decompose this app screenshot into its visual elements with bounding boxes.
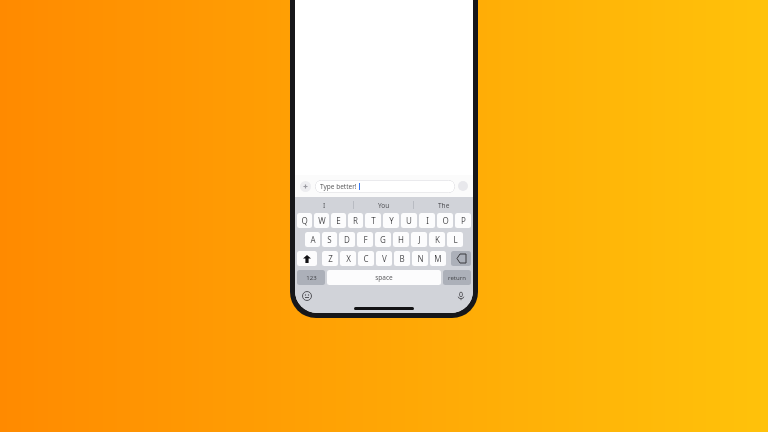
staticText: G xyxy=(380,234,386,245)
button[interactable]: W xyxy=(314,213,329,228)
staticText: The xyxy=(438,201,450,210)
button[interactable]: space xyxy=(327,270,441,285)
button[interactable]: Add attachment xyxy=(300,181,311,192)
staticText: J xyxy=(418,234,421,245)
staticText: O xyxy=(442,215,449,226)
staticText: E xyxy=(336,215,341,226)
button[interactable]: G xyxy=(375,232,391,247)
button[interactable]: Dictate xyxy=(456,291,466,301)
staticText: A xyxy=(310,234,316,245)
staticText: U xyxy=(406,215,412,226)
button[interactable]: The xyxy=(414,197,473,213)
button[interactable]: N xyxy=(412,251,428,266)
button[interactable]: Shift xyxy=(297,251,317,266)
button[interactable]: H xyxy=(393,232,409,247)
staticText: M xyxy=(434,253,442,264)
staticText: S xyxy=(327,234,332,245)
staticText: return xyxy=(448,274,466,282)
staticText: B xyxy=(399,253,405,264)
button[interactable]: U xyxy=(401,213,417,228)
button[interactable]: return xyxy=(443,270,471,285)
button[interactable]: Backspace xyxy=(451,251,471,266)
button[interactable]: V xyxy=(376,251,392,266)
button[interactable]: F xyxy=(357,232,373,247)
staticText: K xyxy=(435,234,440,245)
button[interactable]: D xyxy=(339,232,355,247)
button[interactable]: I xyxy=(295,197,353,213)
staticText: space xyxy=(375,273,393,282)
button[interactable]: I xyxy=(419,213,435,228)
button[interactable]: 123 xyxy=(297,270,325,285)
button[interactable]: L xyxy=(447,232,463,247)
staticText: Y xyxy=(389,215,394,226)
button[interactable]: X xyxy=(340,251,356,266)
staticText: H xyxy=(398,234,404,245)
button[interactable]: Z xyxy=(322,251,338,266)
staticText: D xyxy=(344,234,350,245)
staticText: N xyxy=(417,253,424,264)
staticText: F xyxy=(363,234,368,245)
button[interactable]: P xyxy=(455,213,471,228)
button[interactable]: A xyxy=(305,232,320,247)
staticText: W xyxy=(318,215,326,226)
button[interactable]: R xyxy=(348,213,363,228)
button[interactable]: Y xyxy=(383,213,399,228)
button[interactable]: E xyxy=(331,213,346,228)
button[interactable]: M xyxy=(430,251,446,266)
staticText: 123 xyxy=(306,274,317,282)
staticText: L xyxy=(453,234,458,245)
button[interactable]: B xyxy=(394,251,410,266)
staticText: X xyxy=(346,253,351,264)
button[interactable]: C xyxy=(358,251,374,266)
staticText: I xyxy=(323,201,326,210)
staticText: T xyxy=(371,215,376,226)
staticText: You xyxy=(378,201,390,210)
staticText: Z xyxy=(328,253,333,264)
button[interactable]: K xyxy=(429,232,445,247)
button[interactable]: Type better! xyxy=(315,180,455,193)
button[interactable]: J xyxy=(411,232,427,247)
button[interactable]: Q xyxy=(297,213,312,228)
button[interactable]: S xyxy=(322,232,337,247)
button[interactable]: T xyxy=(365,213,381,228)
button[interactable]: Emoji xyxy=(302,291,312,301)
staticText: R xyxy=(353,215,358,226)
staticText: P xyxy=(461,215,466,226)
button[interactable]: Send xyxy=(458,181,468,191)
button[interactable]: O xyxy=(437,213,453,228)
staticText: Type better! xyxy=(320,182,357,191)
staticText: I xyxy=(426,215,429,226)
staticText: C xyxy=(363,253,369,264)
staticText: V xyxy=(382,253,387,264)
staticText: Q xyxy=(301,215,308,226)
button[interactable]: You xyxy=(354,197,413,213)
